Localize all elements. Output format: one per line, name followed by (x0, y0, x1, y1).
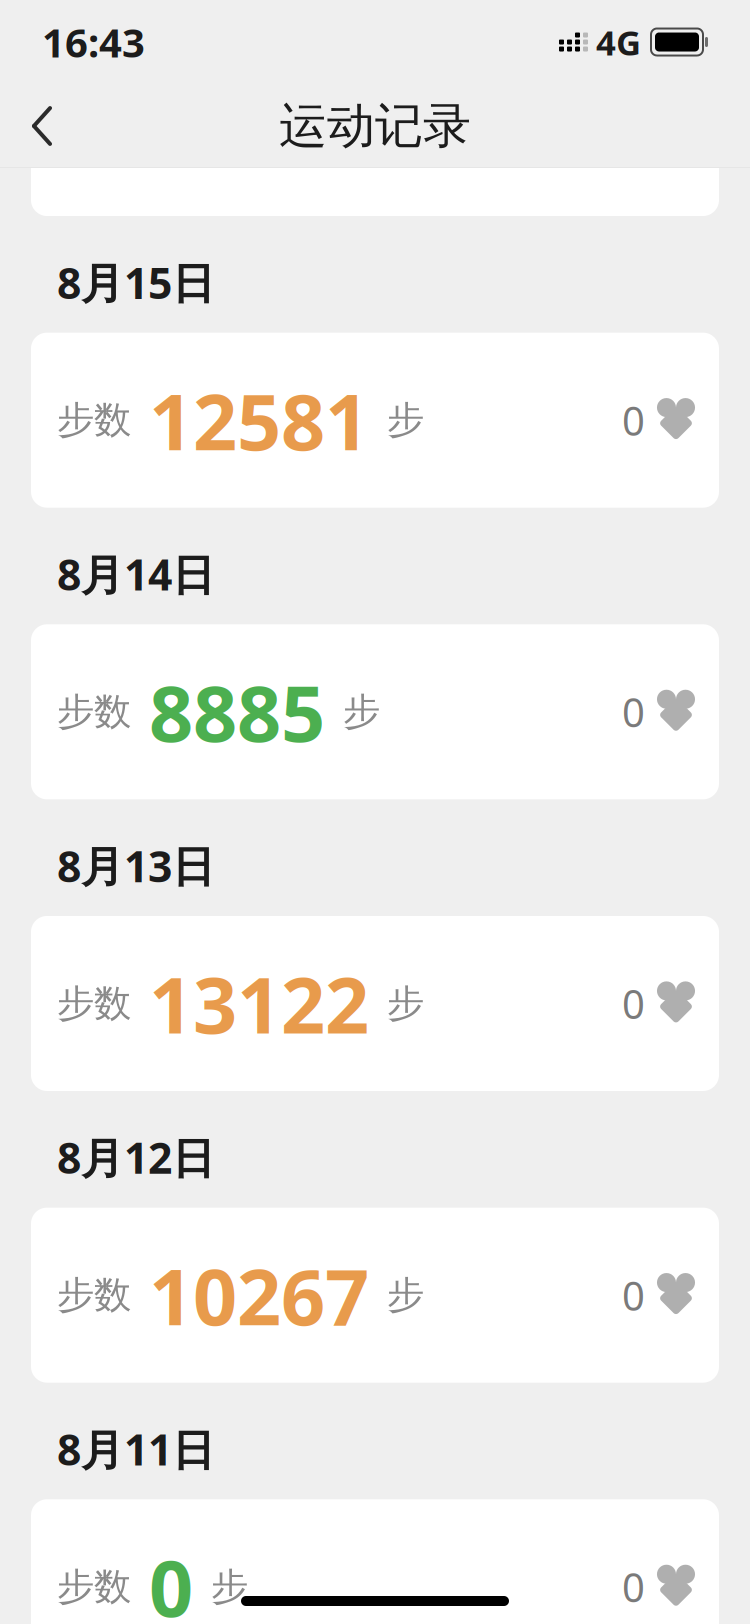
staticText: 步数 (57, 689, 131, 735)
staticText: 步数 (57, 397, 131, 443)
staticText: 8月13日 (57, 837, 215, 894)
staticText: 步 (387, 981, 424, 1026)
staticText: 10267 (149, 1244, 369, 1346)
staticText: 0 (622, 1269, 645, 1322)
staticText: 步数 (57, 1564, 131, 1610)
staticText: 16:43 (42, 15, 145, 68)
staticText: 0 (149, 1535, 193, 1624)
staticText: 步数 (57, 981, 131, 1026)
staticText: 步 (387, 1272, 424, 1318)
staticText: 0 (622, 394, 645, 447)
staticText: 步数 (57, 1272, 131, 1318)
staticText: 0 (622, 977, 645, 1030)
staticText: 运动记录 (279, 96, 471, 155)
staticText: 步 (211, 1564, 248, 1610)
button[interactable]: 步数 (31, 1208, 719, 1383)
staticText: 0 (622, 685, 645, 738)
staticText: 4G (596, 19, 641, 65)
button[interactable]: 步数 (31, 333, 719, 508)
staticText: 8885 (149, 660, 325, 763)
staticText: 0 (622, 1560, 645, 1613)
button[interactable]: 返回 (0, 84, 84, 168)
button[interactable]: 步数 (31, 1499, 719, 1624)
staticText: 8月14日 (57, 546, 215, 602)
button[interactable]: 步数 (31, 916, 719, 1091)
staticText: 8月15日 (57, 254, 215, 311)
staticText: 12581 (149, 369, 369, 471)
staticText: 8月12日 (57, 1129, 215, 1186)
staticText: 步 (343, 689, 380, 735)
button[interactable]: 步数 (31, 624, 719, 799)
staticText: 13122 (149, 952, 369, 1055)
staticText: 步 (387, 397, 424, 443)
staticText: 8月11日 (57, 1421, 215, 1477)
